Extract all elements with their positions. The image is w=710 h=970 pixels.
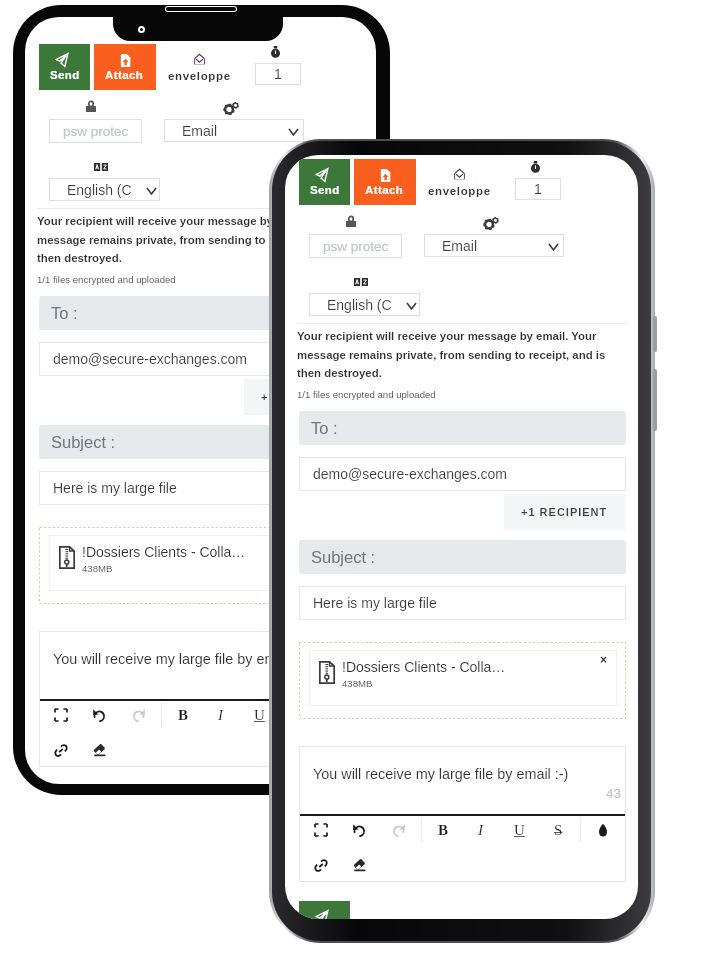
staticText: × <box>600 653 608 666</box>
staticText: I <box>218 707 223 724</box>
button[interactable]: Attach <box>354 159 416 205</box>
staticText: B <box>178 707 189 724</box>
button[interactable]: Undo <box>87 704 109 726</box>
button[interactable]: Undo <box>347 819 369 841</box>
button[interactable]: psw protec <box>49 119 142 143</box>
button[interactable]: Remove attachment <box>595 650 613 668</box>
staticText: Email <box>182 123 218 139</box>
button[interactable]: Remove attachment <box>335 535 353 553</box>
button[interactable]: !Dossiers Clients - Colla… <box>49 535 357 591</box>
button[interactable]: Clear formatting <box>348 854 370 876</box>
staticText: You will receive my large file by email … <box>313 766 569 782</box>
button[interactable]: S <box>547 819 569 841</box>
staticText: 43 <box>606 786 622 801</box>
staticText: B <box>438 822 449 839</box>
button[interactable]: demo@secure-exchanges.com <box>39 342 366 376</box>
staticText: English (C <box>67 182 132 198</box>
staticText: Here is my large file <box>53 480 177 496</box>
staticText: To : <box>311 419 338 437</box>
staticText: Subject : <box>51 433 116 451</box>
button[interactable]: Insert link <box>50 739 72 761</box>
staticText: !Dossiers Clients - Colla… <box>82 544 246 560</box>
button[interactable]: English (C <box>49 178 160 201</box>
button[interactable]: +1 RECIPIENT <box>504 494 625 530</box>
button[interactable]: Send <box>39 44 90 90</box>
staticText: Your recipient will receive your message… <box>37 215 357 264</box>
button[interactable]: Text colour <box>332 704 354 726</box>
button[interactable]: English (C <box>309 293 420 316</box>
staticText: 1/1 files encrypted and uploaded <box>37 274 176 285</box>
button[interactable]: !Dossiers Clients - Colla… <box>309 650 617 706</box>
button[interactable]: Fullscreen <box>50 704 72 726</box>
button[interactable]: Text colour <box>592 819 614 841</box>
staticText: U <box>254 707 265 724</box>
button[interactable]: Redo <box>388 819 410 841</box>
button[interactable]: Subject : <box>299 540 626 574</box>
button[interactable]: 1 <box>255 63 301 85</box>
button[interactable]: To : <box>299 411 626 445</box>
button[interactable]: S <box>287 704 309 726</box>
button[interactable]: B <box>432 819 454 841</box>
staticText: 1 <box>534 181 542 197</box>
staticText: enveloppe <box>428 185 491 198</box>
staticText: Your recipient will receive your message… <box>297 330 617 379</box>
staticText: You will receive my large file by email … <box>53 651 309 667</box>
button[interactable]: Email <box>164 119 304 142</box>
button[interactable]: +1 RECIPIENT <box>244 379 365 415</box>
staticText: psw protec <box>63 124 129 139</box>
staticText: I <box>478 822 483 839</box>
staticText: 1/1 files encrypted and uploaded <box>297 389 436 400</box>
button[interactable]: I <box>209 704 231 726</box>
button[interactable]: Clear formatting <box>88 739 110 761</box>
button[interactable]: B <box>172 704 194 726</box>
button[interactable]: Insert link <box>310 854 332 876</box>
staticText: Subject : <box>311 548 376 566</box>
button[interactable]: demo@secure-exchanges.com <box>299 457 626 491</box>
button[interactable]: U <box>248 704 270 726</box>
button[interactable]: Here is my large file <box>299 586 626 620</box>
staticText: S <box>554 822 563 839</box>
staticText: × <box>340 538 348 551</box>
button[interactable]: To : <box>39 296 366 330</box>
button[interactable]: Email <box>424 234 564 257</box>
staticText: Here is my large file <box>313 595 437 611</box>
button[interactable]: U <box>508 819 530 841</box>
staticText: psw protec <box>323 239 389 254</box>
button[interactable]: Here is my large file <box>39 471 366 505</box>
button[interactable]: Subject : <box>39 425 366 459</box>
staticText: 1 <box>274 66 282 82</box>
staticText: demo@secure-exchanges.com <box>313 466 507 482</box>
staticText: To : <box>51 304 78 322</box>
staticText: enveloppe <box>168 70 231 83</box>
button[interactable]: I <box>469 819 491 841</box>
staticText: +1 RECIPIENT <box>261 391 348 403</box>
button[interactable]: Send <box>299 901 350 919</box>
button[interactable]: psw protec <box>309 234 402 258</box>
staticText: U <box>514 822 525 839</box>
staticText: 438MB <box>82 563 113 574</box>
staticText: Send <box>50 69 80 82</box>
staticText: Send <box>310 184 340 197</box>
button[interactable]: Fullscreen <box>310 819 332 841</box>
staticText: 43 <box>346 671 362 686</box>
staticText: +1 RECIPIENT <box>521 506 608 518</box>
button[interactable]: Attach <box>94 44 156 90</box>
button[interactable]: Redo <box>128 704 150 726</box>
staticText: demo@secure-exchanges.com <box>53 351 247 367</box>
button[interactable]: enveloppe <box>419 169 499 198</box>
button[interactable]: enveloppe <box>159 54 239 83</box>
staticText: Attach <box>365 184 404 197</box>
staticText: S <box>294 707 303 724</box>
button[interactable]: 1 <box>515 178 561 200</box>
button[interactable]: Send <box>299 159 350 205</box>
staticText: 438MB <box>342 678 373 689</box>
staticText: Email <box>442 238 478 254</box>
staticText: !Dossiers Clients - Colla… <box>342 659 506 675</box>
staticText: English (C <box>327 297 392 313</box>
staticText: Attach <box>105 69 144 82</box>
